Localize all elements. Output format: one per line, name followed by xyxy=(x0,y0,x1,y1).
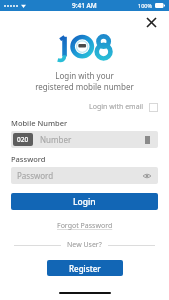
staticText: Login with email xyxy=(89,102,144,112)
button[interactable]: Register xyxy=(47,260,123,276)
staticText: New User? xyxy=(67,240,102,250)
button[interactable]: Password xyxy=(11,167,158,184)
staticText: Password xyxy=(17,170,141,181)
button[interactable]: Forgot Password xyxy=(51,219,119,233)
button[interactable]: 020 xyxy=(11,131,158,148)
staticText: Login with your registered mobile number xyxy=(18,70,151,92)
staticText: 020 xyxy=(17,135,29,144)
staticText: Password xyxy=(11,154,46,164)
button[interactable]: Login with email xyxy=(11,100,158,114)
staticText: Register xyxy=(69,263,101,274)
button[interactable]: Close xyxy=(142,13,160,31)
button[interactable]: Login xyxy=(11,193,158,210)
staticText: Login xyxy=(73,196,96,208)
button[interactable]: Pick contact xyxy=(142,135,152,145)
staticText: 9:41 AM xyxy=(72,1,97,10)
staticText: 100% xyxy=(138,2,153,9)
staticText: Number xyxy=(40,134,142,145)
staticText: Mobile Number xyxy=(11,118,68,128)
button[interactable]: Show password xyxy=(141,170,152,181)
